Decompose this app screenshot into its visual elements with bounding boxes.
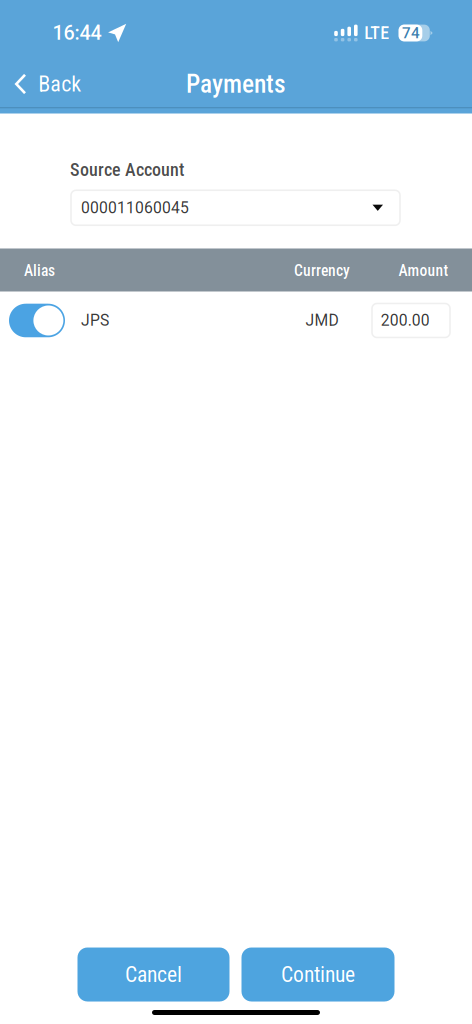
button[interactable]: 000011060045: [71, 190, 400, 225]
staticText: 16:44: [52, 21, 101, 45]
staticText: 200.00: [381, 311, 430, 330]
staticText: 74: [402, 24, 420, 42]
staticText: Currency: [294, 261, 350, 280]
button[interactable]: Continue: [241, 947, 394, 1001]
staticText: Payments: [186, 69, 286, 99]
button[interactable]: Back: [0, 59, 95, 109]
staticText: Back: [38, 71, 81, 97]
button[interactable]: Cancel: [77, 947, 229, 1001]
staticText: Alias: [24, 261, 55, 280]
staticText: LTE: [364, 22, 389, 44]
staticText: Continue: [281, 962, 355, 987]
button[interactable]: Toggle JPS: [9, 304, 65, 337]
staticText: JPS: [81, 311, 109, 330]
staticText: Source Account: [70, 159, 184, 180]
staticText: Amount: [398, 261, 448, 280]
staticText: 000011060045: [81, 199, 189, 217]
staticText: Cancel: [125, 962, 182, 987]
staticText: JMD: [305, 311, 338, 330]
